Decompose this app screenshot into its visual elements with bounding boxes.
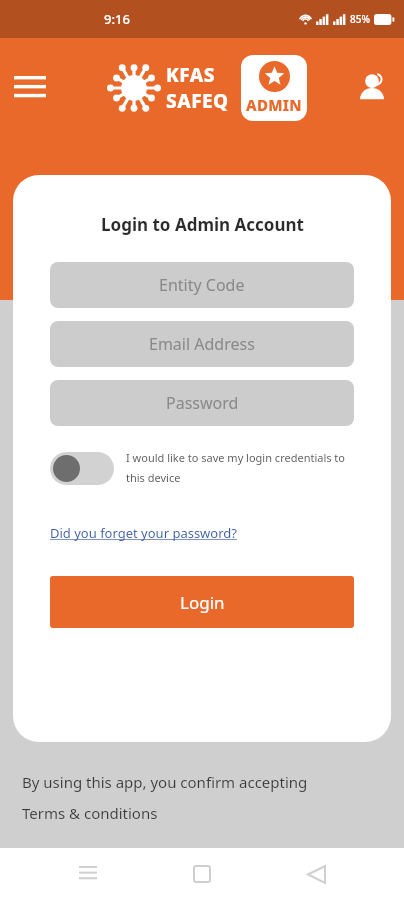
staticText: By using this app, you confirm accepting <box>22 772 308 792</box>
button[interactable]: Profile <box>348 64 396 112</box>
button[interactable]: I would like to save my login credential… <box>50 450 354 486</box>
button[interactable]: Did you forget your password? <box>50 524 237 542</box>
button[interactable]: Email Address <box>50 321 354 367</box>
button[interactable]: Recents <box>62 848 114 900</box>
button[interactable]: Home <box>176 848 228 900</box>
staticText: 85% <box>350 12 370 26</box>
button[interactable]: Admin <box>241 55 307 121</box>
staticText: KFAS <box>166 62 215 88</box>
staticText: Login to Admin Account <box>101 213 304 236</box>
button[interactable]: Terms & conditions <box>22 803 158 823</box>
button[interactable]: Password <box>50 380 354 426</box>
staticText: Password <box>166 392 239 414</box>
staticText: SAFEQ <box>166 88 229 114</box>
staticText: Entity Code <box>159 274 245 296</box>
button[interactable]: Entity Code <box>50 262 354 308</box>
button[interactable]: Login <box>50 576 354 628</box>
staticText: 9:16 <box>104 10 130 28</box>
staticText: Login <box>180 591 225 614</box>
staticText: ADMIN <box>246 95 302 115</box>
staticText: Email Address <box>149 333 255 355</box>
button[interactable]: Back <box>290 848 342 900</box>
staticText: I would like to save my login credential… <box>126 450 354 486</box>
button[interactable]: Menu <box>8 66 52 110</box>
